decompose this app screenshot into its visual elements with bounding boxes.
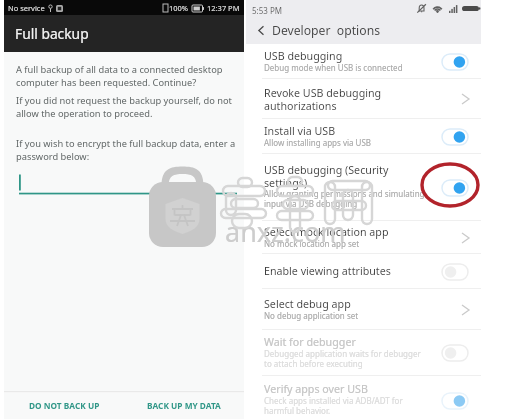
button[interactable]: Back [250,19,272,41]
button[interactable]: Revoke USB debugging authorizations [246,79,481,119]
staticText: DO NOT BACK UP [29,400,100,411]
staticText: A full backup of all data to a connected… [16,63,238,89]
staticText: Wait for debugger [264,335,356,350]
button[interactable]: Verify apps over USB [246,376,481,419]
staticText: Developer options [272,22,381,39]
button[interactable]: BACK UP MY DATA [124,392,244,419]
staticText: Select debug app [264,297,351,312]
staticText: Verify apps over USB [264,382,368,397]
button[interactable]: USB debugging (Security settings) [246,154,481,221]
staticText: No mock location app set [264,238,360,249]
staticText: USB debugging (Security settings) [264,163,389,190]
staticText: 12:37 PM [207,3,240,13]
button[interactable]: Wait for debugger [246,330,481,376]
button[interactable]: DO NOT BACK UP [4,392,124,419]
staticText: Enable viewing attributes [264,264,391,279]
staticText: Allow installing apps via USB [264,137,372,148]
staticText: Revoke USB debugging authorizations [264,86,382,113]
staticText: No service [8,3,45,13]
staticText: Select mock location app [264,225,389,240]
button[interactable]: Enable viewing attributes [246,254,481,289]
staticText: 5:53 PM [252,5,283,16]
staticText: Allow granting permissions and simulatin… [264,188,425,210]
staticText: BACK UP MY DATA [147,400,221,411]
staticText: If you wish to encrypt the full backup d… [16,137,238,163]
staticText: anxz.com [225,213,346,250]
staticText: If you did not request the backup yourse… [16,94,238,120]
staticText: No debug application set [264,310,359,321]
staticText: Check apps installed via ADB/ADT for har… [264,395,403,417]
staticText: Install via USB [264,124,336,139]
staticText: USB debugging [264,49,343,64]
staticText: Full backup [15,24,89,43]
button[interactable]: Select debug app [246,289,481,330]
staticText: 100% [169,3,189,13]
button[interactable] [13,170,243,196]
staticText: Debug mode when USB is connected [264,62,403,73]
button[interactable]: USB debugging [246,44,481,79]
button[interactable]: Select mock location app [246,221,481,254]
staticText: Debugged application waits for debugger … [264,348,421,370]
button[interactable]: Install via USB [246,119,481,154]
